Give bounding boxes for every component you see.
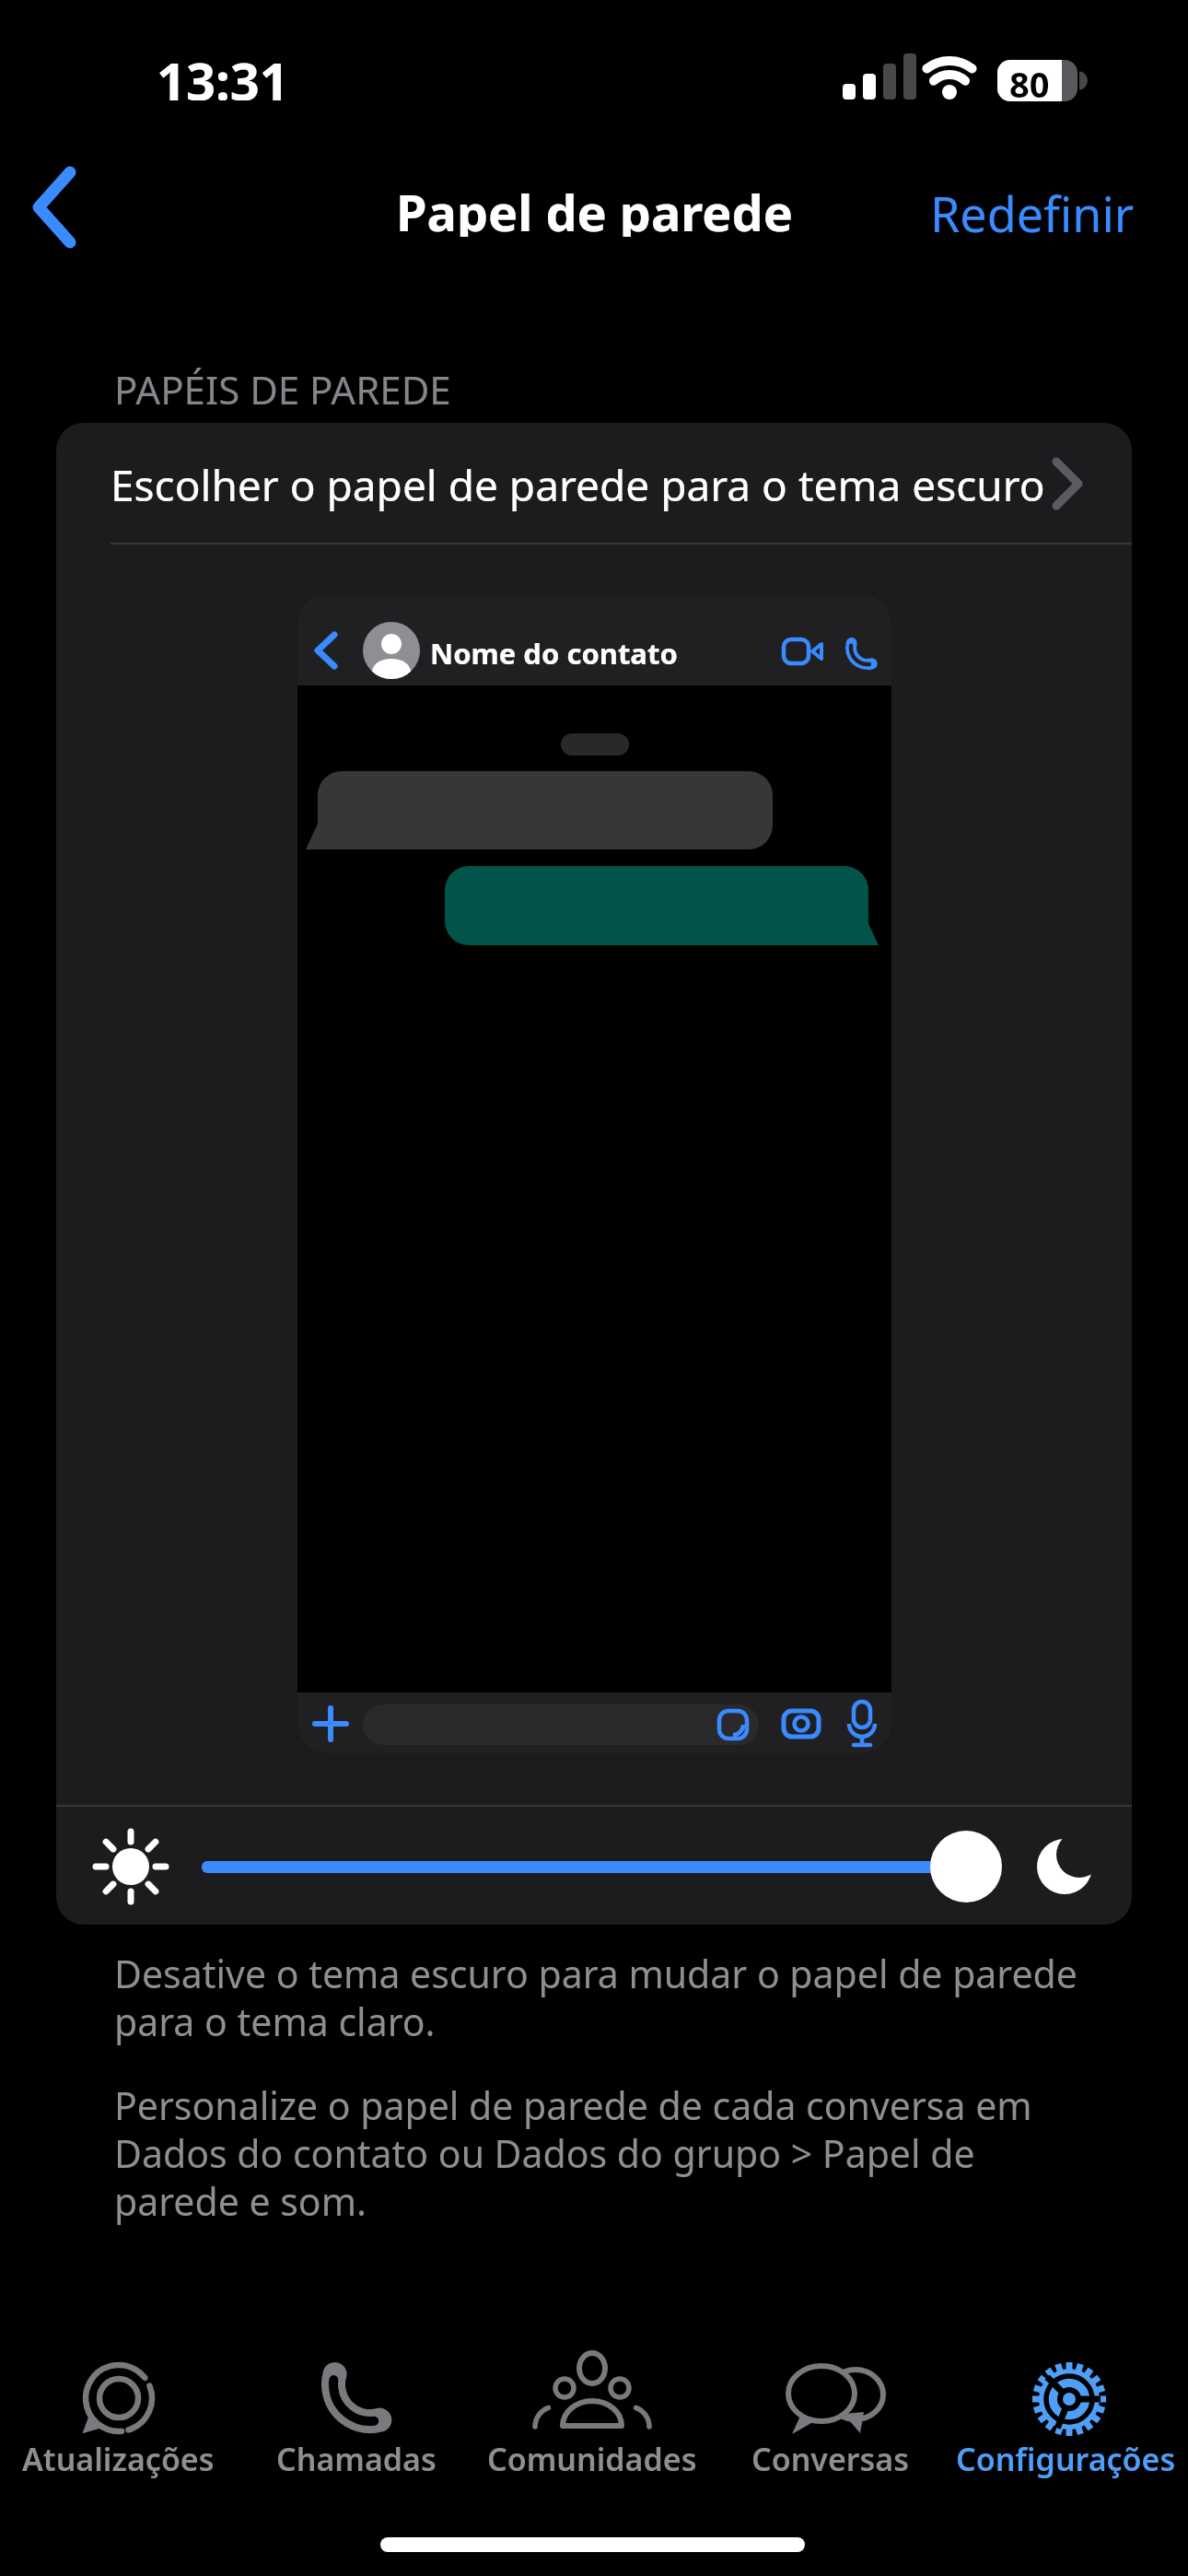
staticText: Comunidades (487, 2438, 697, 2480)
button[interactable]: Atualizações (0, 2347, 256, 2480)
button[interactable]: Chamadas (218, 2347, 495, 2480)
staticText: Chamadas (276, 2438, 437, 2480)
staticText: Desative o tema escuro para mudar o pape… (114, 1948, 1077, 2047)
staticText: Papel de parede (396, 178, 793, 237)
button[interactable]: Conversas (693, 2347, 969, 2480)
staticText: Configurações (956, 2438, 1176, 2480)
button[interactable] (56, 1807, 1132, 1925)
button[interactable]: Escolher o papel de parede para o tema e… (56, 423, 1132, 543)
button[interactable]: Comunidades (454, 2347, 730, 2480)
staticText: Nome do contato (430, 634, 678, 673)
staticText: 13:31 (157, 45, 289, 100)
staticText: Conversas (751, 2438, 910, 2480)
staticText: Redefinir (930, 181, 1135, 236)
button[interactable]: Redefinir (930, 181, 1135, 236)
button[interactable] (28, 168, 74, 247)
button[interactable]: Configurações (927, 2347, 1188, 2480)
staticText: PAPÉIS DE PAREDE (114, 363, 451, 416)
staticText: Personalize o papel de parede de cada co… (114, 2079, 1032, 2227)
staticText: 80 (1009, 60, 1050, 101)
staticText: Escolher o papel de parede para o tema e… (111, 456, 1045, 514)
staticText: Atualizações (22, 2438, 215, 2480)
